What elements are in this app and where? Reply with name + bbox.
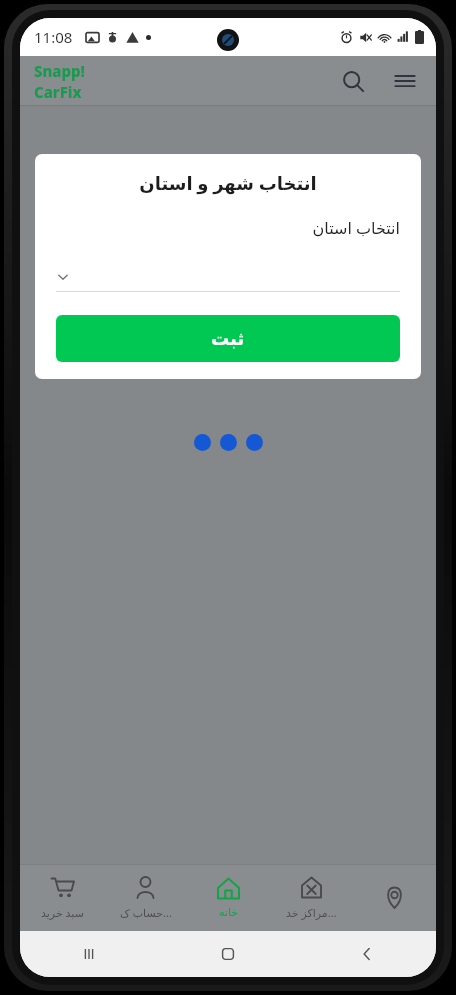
staticText: خانه	[219, 906, 239, 919]
staticText: حساب ک...	[120, 905, 172, 920]
staticText: انتخاب شهر و استان	[56, 171, 400, 196]
staticText: انتخاب استان	[56, 217, 400, 239]
staticText: مراکز خد...	[286, 905, 337, 920]
button[interactable]: Nearby centers map	[353, 864, 436, 931]
button[interactable]: مراکز خد...	[270, 864, 353, 931]
button[interactable]: ثبت	[56, 315, 400, 362]
staticText: سبد خرید	[41, 905, 84, 920]
button[interactable]: Menu	[388, 64, 422, 98]
staticText: ثبت	[211, 328, 245, 349]
staticText: Snapp!	[34, 61, 85, 81]
button[interactable]: سبد خرید	[20, 864, 104, 931]
staticText: 11:08	[34, 27, 73, 47]
button[interactable]: Select province	[56, 263, 400, 291]
staticText: CarFix	[34, 82, 82, 102]
button[interactable]: خانه	[187, 864, 270, 931]
button[interactable]: Search	[336, 64, 370, 98]
button[interactable]: حساب ک...	[104, 864, 187, 931]
